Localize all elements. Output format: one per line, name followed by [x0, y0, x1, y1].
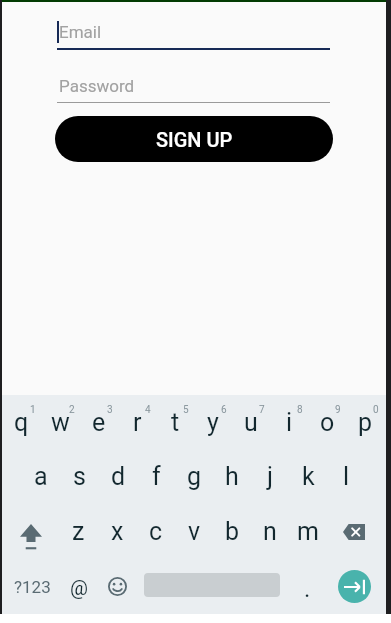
button[interactable]: @	[60, 559, 98, 614]
button[interactable]: w	[41, 395, 80, 449]
staticText: 5	[183, 404, 189, 416]
staticText: b	[225, 517, 240, 546]
staticText: 3	[107, 404, 113, 416]
button[interactable]: b	[213, 504, 251, 559]
button[interactable]: Backspace	[327, 504, 386, 559]
button[interactable]: v	[175, 504, 213, 559]
staticText: ?123	[14, 577, 51, 597]
staticText: Email	[59, 22, 102, 42]
button[interactable]: l	[327, 449, 365, 504]
button[interactable]: r	[118, 395, 156, 449]
button[interactable]: t	[156, 395, 194, 449]
staticText: q	[14, 408, 29, 437]
button[interactable]: y	[194, 395, 232, 449]
staticText: o	[320, 408, 335, 437]
button[interactable]: e	[80, 395, 118, 449]
staticText: j	[267, 462, 273, 491]
button[interactable]: Email	[57, 14, 330, 50]
button[interactable]: z	[59, 504, 98, 559]
staticText: l	[343, 462, 350, 491]
staticText: 4	[145, 404, 151, 416]
button[interactable]: .	[289, 559, 325, 614]
staticText: Password	[59, 76, 135, 96]
staticText: 2	[69, 404, 75, 416]
button[interactable]: a	[21, 449, 60, 504]
staticText: @	[70, 576, 88, 599]
button[interactable]: ?123	[2, 559, 62, 614]
button[interactable]: n	[251, 504, 289, 559]
button[interactable]: h	[213, 449, 251, 504]
button[interactable]: Emoji	[98, 559, 136, 614]
staticText: z	[72, 517, 85, 546]
staticText: 9	[335, 404, 341, 416]
button[interactable]: g	[175, 449, 213, 504]
button[interactable]: d	[99, 449, 137, 504]
button[interactable]: Space	[136, 559, 288, 614]
staticText: e	[92, 408, 106, 437]
staticText: a	[34, 462, 48, 491]
button[interactable]: SIGN UP	[55, 116, 333, 162]
button[interactable]: Shift	[2, 504, 59, 559]
staticText: r	[133, 408, 142, 437]
staticText: x	[111, 517, 124, 546]
staticText: p	[358, 408, 373, 437]
button[interactable]: Password	[57, 68, 330, 103]
button[interactable]: q	[2, 395, 41, 449]
staticText: 1	[30, 404, 36, 416]
staticText: m	[297, 517, 319, 546]
staticText: v	[188, 517, 201, 546]
button[interactable]: k	[289, 449, 327, 504]
staticText: f	[152, 462, 161, 491]
button[interactable]: p	[346, 395, 384, 449]
button[interactable]: Next	[338, 570, 371, 603]
staticText: 0	[373, 404, 379, 416]
staticText: .	[304, 575, 311, 603]
staticText: i	[286, 408, 293, 437]
staticText: c	[149, 517, 163, 546]
staticText: 8	[297, 404, 303, 416]
staticText: n	[263, 517, 277, 546]
button[interactable]: j	[251, 449, 289, 504]
staticText: s	[73, 462, 86, 491]
staticText: SIGN UP	[156, 128, 233, 151]
staticText: w	[51, 408, 70, 437]
button[interactable]: m	[289, 504, 327, 559]
staticText: t	[171, 408, 180, 437]
button[interactable]: x	[98, 504, 137, 559]
button[interactable]: f	[137, 449, 175, 504]
staticText: y	[207, 408, 219, 437]
button[interactable]: i	[270, 395, 308, 449]
staticText: d	[111, 462, 126, 491]
staticText: 7	[259, 404, 265, 416]
staticText: 6	[221, 404, 227, 416]
button[interactable]: u	[232, 395, 270, 449]
button[interactable]: s	[60, 449, 99, 504]
button[interactable]: c	[137, 504, 175, 559]
staticText: g	[187, 462, 202, 491]
staticText: u	[244, 408, 258, 437]
button[interactable]: o	[308, 395, 346, 449]
staticText: k	[302, 462, 315, 491]
staticText: h	[225, 462, 239, 491]
